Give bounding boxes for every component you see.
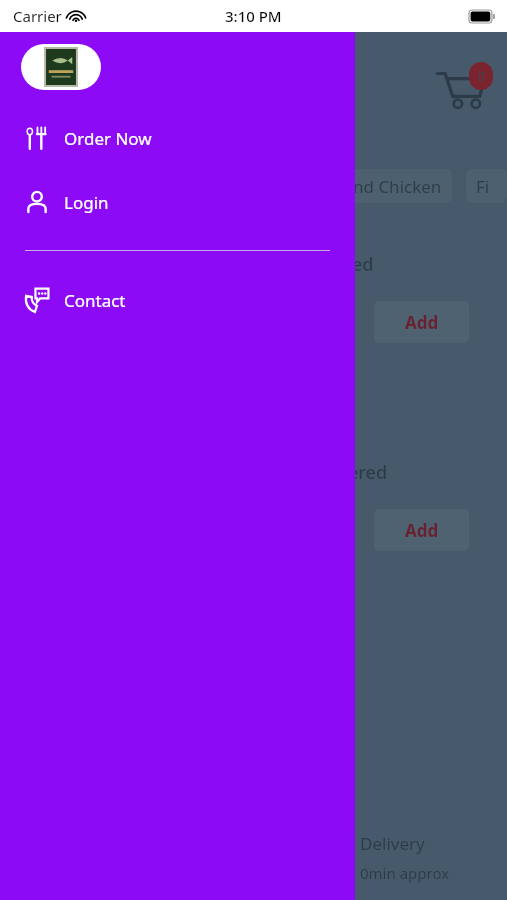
button[interactable]: Login — [0, 180, 355, 224]
staticText: Add — [405, 519, 439, 542]
staticText: 3:10 PM — [225, 6, 282, 26]
staticText: Delivery — [360, 832, 425, 855]
staticText: Carrier — [13, 6, 62, 26]
button[interactable]: Contact — [0, 278, 355, 322]
staticText: ed — [352, 252, 374, 277]
button[interactable]: Restaurant logo — [21, 44, 101, 90]
staticText: Add — [405, 311, 439, 334]
button[interactable]: Add — [374, 301, 469, 343]
staticText: 0min approx — [360, 863, 450, 883]
button[interactable]: Cart — [431, 60, 495, 112]
button[interactable]: Fi — [466, 169, 507, 203]
staticText: Order Now — [64, 127, 152, 150]
staticText: Login — [64, 191, 109, 214]
staticText: nd Chicken — [353, 175, 442, 198]
button[interactable]: Add — [374, 509, 469, 551]
staticText: Fi — [476, 175, 490, 198]
staticText: ered — [348, 460, 388, 485]
button[interactable]: Order Now — [0, 116, 355, 160]
button[interactable]: nd Chicken — [300, 169, 452, 203]
staticText: Contact — [64, 289, 126, 312]
staticText: 0 — [478, 68, 485, 84]
